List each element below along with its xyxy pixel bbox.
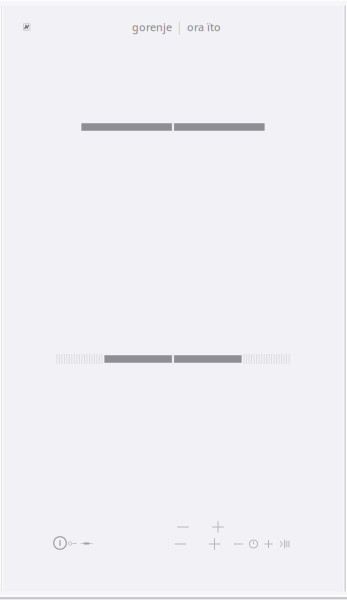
button[interactable]: Stop and go [80,536,93,550]
button[interactable]: Increase timer [262,536,275,551]
button[interactable]: Power boost [278,536,290,551]
button[interactable]: Timer [246,536,260,551]
button[interactable]: Decrease timer [231,536,245,551]
button[interactable]: Child lock [68,536,77,550]
button[interactable]: Power [52,535,68,551]
button[interactable]: Increase rear zone [210,519,226,534]
staticText: ora ïto [187,20,221,34]
button[interactable]: Decrease front zone [172,536,189,551]
button[interactable]: Decrease rear zone [175,519,191,534]
button[interactable]: Increase front zone [206,536,223,551]
staticText: gorenje [132,20,172,34]
staticText: | [176,19,183,35]
